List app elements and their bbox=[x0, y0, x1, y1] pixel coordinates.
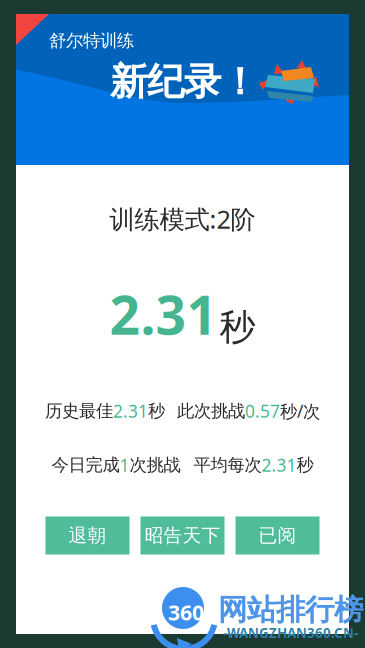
staticText: 训练模式:2阶 bbox=[109, 202, 255, 236]
staticText: 退朝 bbox=[68, 524, 106, 547]
staticText: 网站排行榜 bbox=[218, 592, 363, 628]
staticText: 此次挑战 bbox=[177, 400, 245, 422]
staticText: 1 bbox=[119, 453, 129, 476]
staticText: 秒 bbox=[296, 454, 313, 476]
staticText: 秒 bbox=[219, 305, 255, 349]
staticText: 已阅 bbox=[258, 524, 296, 547]
staticText: 历史最佳 bbox=[45, 400, 113, 422]
staticText: 秒 bbox=[148, 400, 165, 422]
button[interactable]: 已阅 bbox=[235, 516, 319, 554]
staticText: 0.57 bbox=[245, 399, 280, 422]
staticText: 2.31 bbox=[109, 279, 217, 349]
staticText: 平均每次 bbox=[193, 454, 261, 476]
staticText: 秒/次 bbox=[280, 399, 320, 422]
staticText: 今日完成 bbox=[51, 454, 119, 476]
staticText: -WANGZHAN360.CN- bbox=[223, 624, 358, 642]
staticText: 次挑战 bbox=[129, 454, 180, 476]
button[interactable]: 昭告天下 bbox=[140, 516, 224, 554]
staticText: 2.31 bbox=[113, 399, 148, 422]
button[interactable]: 退朝 bbox=[45, 516, 129, 554]
staticText: 360 bbox=[168, 598, 204, 626]
staticText: 舒尔特训练 bbox=[49, 30, 134, 51]
staticText: 2.31 bbox=[261, 453, 296, 476]
staticText: 新纪录！ bbox=[110, 59, 258, 105]
staticText: 昭告天下 bbox=[144, 524, 220, 547]
